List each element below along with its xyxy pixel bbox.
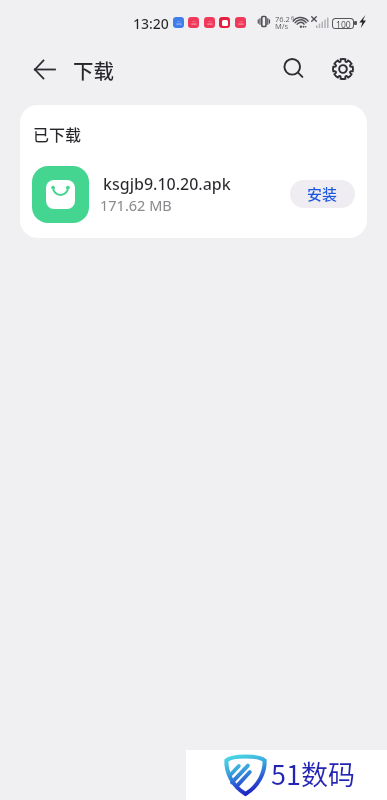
button[interactable]: Settings [327, 53, 359, 85]
staticText: ksgjb9.10.20.apk [103, 173, 231, 195]
button[interactable]: Search [278, 53, 310, 85]
staticText: 13:20 [133, 14, 169, 33]
button[interactable]: Back [24, 58, 64, 80]
staticText: 100 [336, 19, 351, 28]
staticText: 6 [291, 14, 295, 22]
staticText: 76.2 [275, 14, 290, 24]
staticText: 安装 [307, 183, 338, 205]
staticText: 已下载 [33, 122, 82, 145]
staticText: 51数码 [271, 754, 355, 793]
button[interactable]: 安装 [290, 180, 355, 208]
staticText: 下载 [73, 55, 114, 85]
staticText: 171.62 MB [100, 195, 172, 215]
staticText: M/s [275, 21, 289, 31]
